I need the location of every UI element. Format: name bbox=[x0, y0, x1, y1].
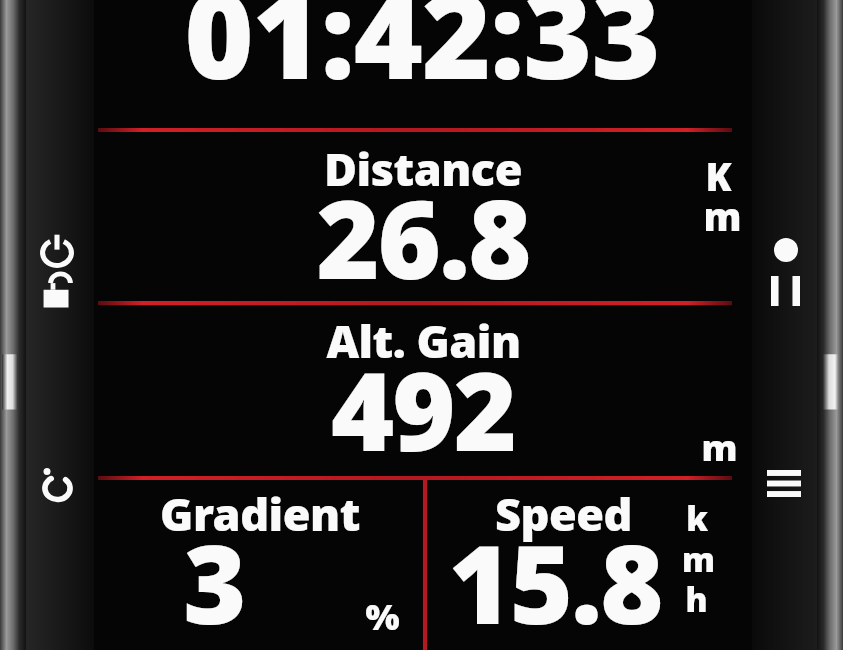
button[interactable]: Alt. Gain bbox=[94, 303, 752, 478]
button[interactable]: Lap bbox=[40, 468, 75, 507]
button[interactable]: Record bbox=[774, 238, 798, 262]
button[interactable]: Distance bbox=[94, 130, 752, 303]
staticText: m bbox=[703, 190, 742, 242]
staticText: m bbox=[682, 537, 715, 582]
staticText: k bbox=[686, 496, 708, 541]
button[interactable]: Lock bbox=[41, 272, 73, 309]
staticText: 3 bbox=[183, 509, 245, 650]
staticText: Speed bbox=[495, 483, 632, 544]
button[interactable]: Power bbox=[40, 234, 74, 268]
staticText: 492 bbox=[331, 336, 515, 483]
button[interactable]: Pause bbox=[771, 276, 800, 306]
staticText: Alt. Gain bbox=[326, 310, 521, 371]
staticText: 26.8 bbox=[316, 164, 530, 311]
staticText: Gradient bbox=[160, 483, 360, 544]
staticText: % bbox=[365, 592, 400, 641]
staticText: h bbox=[685, 577, 708, 622]
button[interactable]: Menu bbox=[767, 470, 801, 497]
staticText: m bbox=[701, 423, 738, 472]
staticText: Distance bbox=[324, 138, 522, 199]
button[interactable]: Speed bbox=[425, 478, 752, 650]
button[interactable]: Gradient bbox=[94, 478, 425, 650]
staticText: K bbox=[705, 150, 732, 202]
staticText: 15.8 bbox=[448, 509, 662, 650]
staticText: 01:42:33 bbox=[184, 0, 660, 114]
button[interactable]: 01:42:33 bbox=[0, 0, 843, 121]
